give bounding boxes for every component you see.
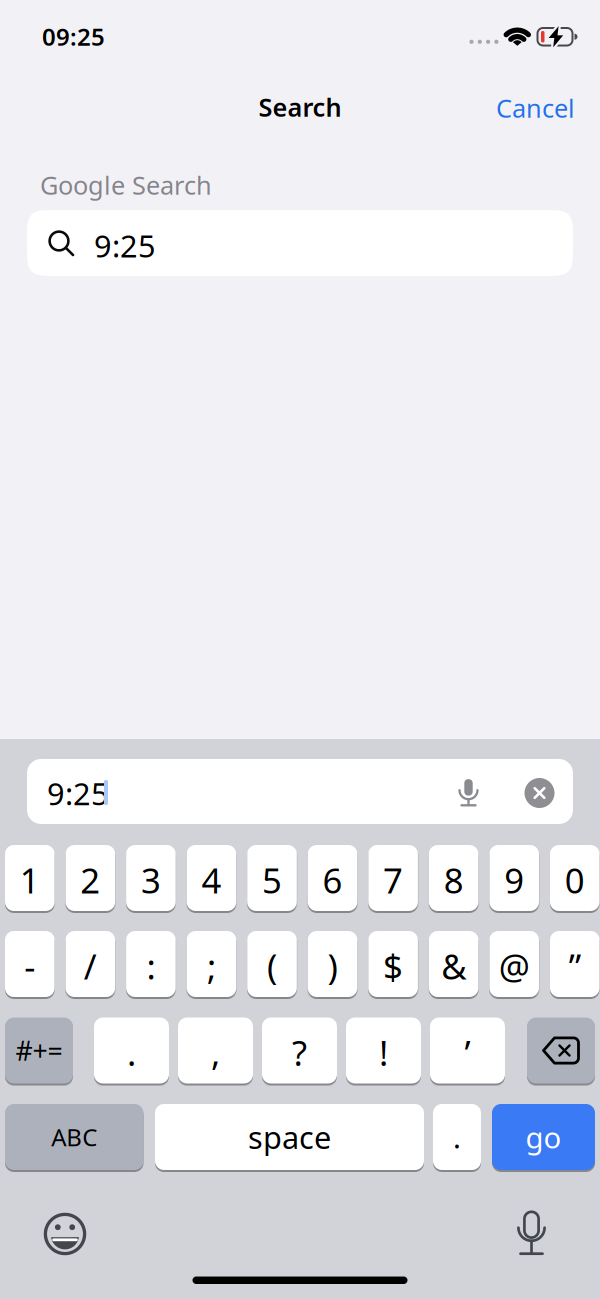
button[interactable]: 9 — [489, 845, 539, 911]
staticText: , — [211, 1029, 220, 1075]
staticText: / — [84, 943, 97, 989]
staticText: go — [525, 1117, 561, 1156]
staticText: 4 — [201, 857, 221, 903]
staticText: : — [146, 943, 155, 989]
button[interactable]: space — [155, 1104, 424, 1170]
button[interactable]: 4 — [187, 845, 236, 911]
button[interactable]: go — [492, 1104, 595, 1170]
button[interactable]: / — [65, 931, 115, 997]
button[interactable]: 2 — [65, 845, 115, 911]
staticText: $ — [383, 943, 403, 989]
staticText: ( — [267, 943, 277, 989]
button[interactable]: - — [5, 931, 55, 997]
button[interactable]: . — [94, 1017, 169, 1083]
staticText: 2 — [80, 857, 100, 903]
button[interactable]: Cancel — [496, 91, 575, 125]
staticText: 1 — [20, 857, 40, 903]
button[interactable]: Dictation — [517, 1210, 546, 1256]
button[interactable]: 1 — [5, 845, 55, 911]
button[interactable]: , — [178, 1017, 253, 1083]
staticText: 9:25 — [94, 225, 156, 266]
staticText: Google Search — [40, 168, 212, 202]
button[interactable]: 9:25 — [27, 210, 573, 276]
staticText: space — [248, 1117, 331, 1157]
staticText: 7 — [383, 857, 403, 903]
staticText: 09:25 — [42, 20, 105, 52]
button[interactable]: @ — [489, 931, 539, 997]
button[interactable]: ( — [247, 931, 297, 997]
button[interactable]: ? — [262, 1017, 337, 1083]
staticText: @ — [499, 943, 530, 989]
button[interactable]: : — [126, 931, 176, 997]
button[interactable]: 0 — [550, 845, 599, 911]
staticText: - — [24, 943, 35, 989]
staticText: ) — [328, 943, 338, 989]
staticText: . — [453, 1117, 461, 1156]
button[interactable]: Delete — [527, 1017, 595, 1083]
staticText: 3 — [141, 857, 161, 903]
button[interactable]: & — [429, 931, 478, 997]
button[interactable]: ’ — [430, 1017, 505, 1083]
staticText: 9:25 — [47, 773, 109, 814]
staticText: 9 — [504, 857, 524, 903]
button[interactable]: . — [433, 1104, 481, 1170]
staticText: 0 — [565, 857, 585, 903]
staticText: ” — [569, 943, 581, 989]
button[interactable]: ! — [346, 1017, 421, 1083]
button[interactable]: $ — [368, 931, 418, 997]
staticText: Cancel — [496, 91, 575, 125]
button[interactable]: 8 — [429, 845, 478, 911]
button[interactable]: 3 — [126, 845, 176, 911]
staticText: ABC — [51, 1121, 97, 1153]
button[interactable]: #+= — [5, 1017, 73, 1083]
button[interactable]: Emoji — [43, 1212, 87, 1256]
staticText: 6 — [323, 857, 343, 903]
button[interactable]: ABC — [5, 1104, 143, 1170]
staticText: ’ — [464, 1029, 470, 1075]
staticText: & — [441, 943, 466, 989]
button[interactable]: ” — [550, 931, 599, 997]
button[interactable]: 5 — [247, 845, 297, 911]
button[interactable]: 6 — [308, 845, 357, 911]
staticText: 8 — [444, 857, 464, 903]
staticText: . — [127, 1029, 136, 1075]
staticText: ; — [207, 943, 216, 989]
button[interactable]: ; — [187, 931, 236, 997]
staticText: ! — [379, 1029, 388, 1075]
button[interactable]: 7 — [368, 845, 418, 911]
staticText: Search — [258, 90, 341, 124]
button[interactable]: ) — [308, 931, 357, 997]
staticText: ? — [292, 1029, 307, 1075]
staticText: #+= — [15, 1033, 62, 1068]
button[interactable]: Dictation — [458, 779, 478, 807]
staticText: 5 — [262, 857, 282, 903]
button[interactable]: Clear text — [524, 778, 554, 808]
